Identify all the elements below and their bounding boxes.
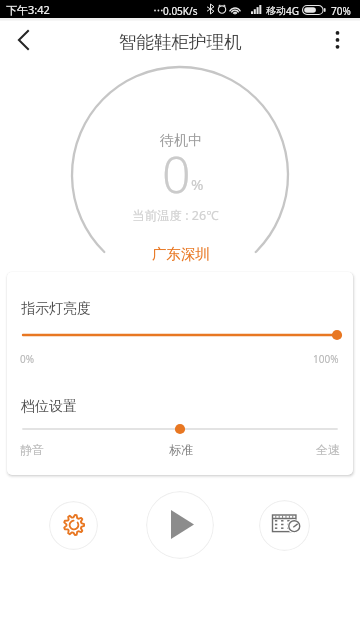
staticText: 标准 — [169, 442, 193, 457]
staticText: 全速 — [316, 442, 340, 457]
staticText: 4G — [286, 4, 299, 18]
staticText: 下午3:42 — [6, 2, 50, 17]
staticText: 智能鞋柜护理机 — [119, 31, 242, 53]
staticText: % — [191, 174, 204, 194]
staticText: 待机中 — [160, 132, 202, 150]
staticText: 当前温度 : 26℃ — [132, 207, 219, 224]
staticText: 0.05K/s — [163, 4, 198, 18]
staticText: 0 — [162, 140, 191, 208]
button[interactable]: More options — [316, 20, 360, 64]
button[interactable]: Schedule — [259, 500, 310, 551]
staticText: 指示灯亮度 — [21, 300, 91, 318]
button[interactable]: Settings — [49, 501, 98, 550]
button[interactable] — [23, 422, 337, 436]
staticText: 0% — [20, 352, 35, 366]
staticText: 广东深圳 — [152, 245, 210, 263]
staticText: 档位设置 — [21, 398, 77, 416]
staticText: 70% — [331, 4, 351, 18]
button[interactable] — [23, 328, 337, 342]
button[interactable]: Back — [0, 20, 46, 66]
button[interactable]: Start — [146, 491, 214, 559]
staticText: 100% — [313, 352, 339, 366]
staticText: 移动 — [266, 4, 286, 17]
staticText: 静音 — [20, 442, 44, 457]
